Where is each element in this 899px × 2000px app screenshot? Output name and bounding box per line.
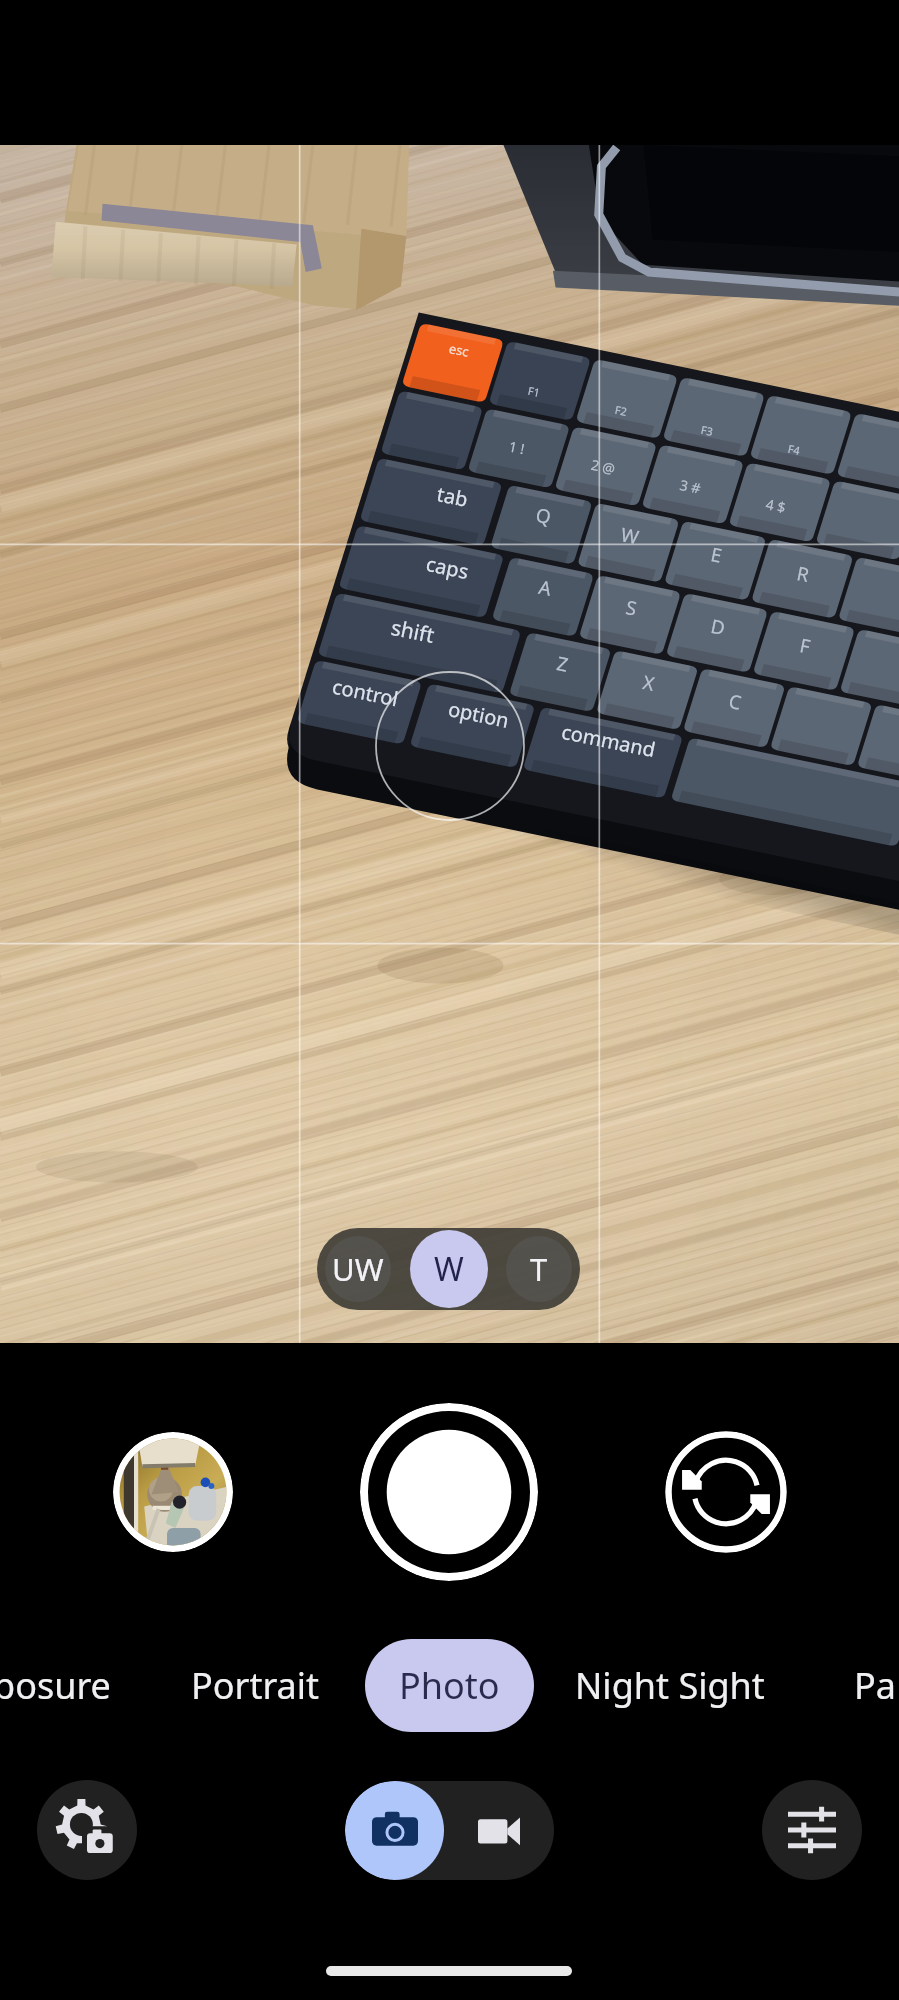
staticText: caps <box>424 550 471 585</box>
button[interactable]: Night Sight <box>541 1639 799 1732</box>
staticText: 4 $ <box>764 494 788 517</box>
staticText: W <box>434 1247 464 1291</box>
staticText: Z <box>554 650 570 678</box>
staticText: F2 <box>614 402 629 419</box>
staticText: posure <box>0 1661 111 1710</box>
staticText: 2 @ <box>589 455 618 478</box>
button[interactable]: Photo <box>365 1639 534 1732</box>
staticText: Photo <box>399 1661 500 1710</box>
staticText: 1 ! <box>507 437 527 458</box>
button[interactable]: posure <box>0 1639 145 1732</box>
button[interactable]: Gallery <box>113 1432 233 1552</box>
staticText: C <box>726 688 744 716</box>
button[interactable]: Take photo <box>360 1403 538 1581</box>
staticText: option <box>446 695 512 734</box>
staticText: F4 <box>787 441 802 458</box>
staticText: F3 <box>700 422 715 439</box>
staticText: F <box>797 632 812 660</box>
staticText: Night Sight <box>575 1661 765 1710</box>
staticText: R <box>794 560 811 588</box>
staticText: S <box>623 594 639 622</box>
staticText: Pan <box>854 1661 899 1710</box>
button[interactable]: Photo mode <box>345 1781 444 1880</box>
staticText: command <box>559 718 658 763</box>
button[interactable]: W <box>410 1230 488 1308</box>
staticText: T <box>530 1248 548 1290</box>
button[interactable]: UW <box>325 1236 391 1302</box>
staticText: A <box>536 574 554 602</box>
staticText: F1 <box>527 383 542 400</box>
button[interactable]: Portrait <box>157 1639 354 1732</box>
button[interactable]: Video mode <box>444 1781 554 1880</box>
staticText: W <box>619 521 641 551</box>
staticText: D <box>708 613 727 641</box>
staticText: Q <box>534 502 553 530</box>
button[interactable]: T <box>506 1236 572 1302</box>
button[interactable]: Switch camera <box>665 1431 787 1553</box>
button[interactable]: Viewfinder <box>0 145 899 1343</box>
staticText: X <box>640 669 657 697</box>
staticText: esc <box>447 339 471 361</box>
staticText: Portrait <box>191 1661 320 1710</box>
staticText: shift <box>389 613 437 650</box>
button[interactable]: Camera settings <box>37 1780 137 1880</box>
button[interactable]: Pan <box>820 1639 899 1732</box>
button[interactable]: Tune settings <box>762 1780 862 1880</box>
staticText: 3 # <box>678 475 703 498</box>
staticText: UW <box>332 1248 384 1290</box>
staticText: control <box>330 673 401 712</box>
staticText: tab <box>435 480 470 513</box>
staticText: E <box>708 541 724 569</box>
